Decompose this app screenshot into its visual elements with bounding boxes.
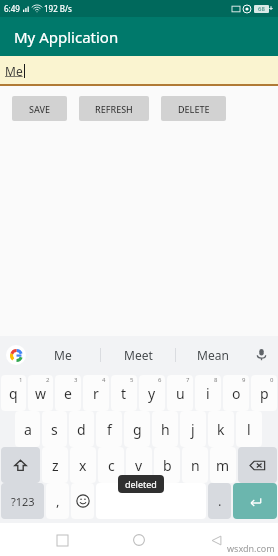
staticText: k <box>217 420 225 439</box>
button[interactable]: b <box>154 447 180 483</box>
staticText: y <box>148 384 156 403</box>
staticText: g <box>133 420 142 439</box>
staticText: r <box>93 384 99 403</box>
staticText: n <box>191 456 200 475</box>
staticText: 0 <box>270 376 274 384</box>
button[interactable]: i <box>195 375 221 411</box>
staticText: 5 <box>130 376 134 384</box>
staticText: v <box>135 456 143 475</box>
staticText: z <box>52 456 59 475</box>
button[interactable]: a <box>15 411 40 447</box>
staticText: 9 <box>242 376 246 384</box>
button[interactable]: ?123 <box>1 483 44 519</box>
staticText: q <box>9 384 18 403</box>
staticText: d <box>77 420 86 439</box>
staticText: REFRESH <box>95 103 133 115</box>
staticText: ?123 <box>11 494 35 509</box>
staticText: o <box>232 384 241 403</box>
button[interactable]: q <box>1 375 26 411</box>
button[interactable]: SAVE <box>12 96 67 121</box>
button[interactable]: t <box>111 375 137 411</box>
button[interactable]: l <box>236 411 262 447</box>
button[interactable]: My Application <box>0 17 278 56</box>
staticText: 1 <box>19 376 23 384</box>
button[interactable]: p <box>251 375 277 411</box>
staticText: 68 <box>258 5 265 13</box>
staticText: p <box>260 384 269 403</box>
button[interactable]: u <box>167 375 193 411</box>
staticText: Meet <box>124 347 153 363</box>
button[interactable]: o <box>223 375 249 411</box>
staticText: Me <box>5 63 23 79</box>
button[interactable]: Emoji <box>71 483 94 519</box>
button[interactable]: h <box>152 411 178 447</box>
staticText: , <box>56 492 60 510</box>
staticText: m <box>216 456 230 475</box>
staticText: s <box>51 420 58 439</box>
staticText: j <box>191 420 195 439</box>
button[interactable]: g <box>124 411 150 447</box>
staticText: DELETE <box>178 103 210 115</box>
staticText: SAVE <box>29 103 51 115</box>
button[interactable]: REFRESH <box>79 96 149 121</box>
button[interactable]: e <box>55 375 81 411</box>
button[interactable]: y <box>139 375 165 411</box>
staticText: b <box>163 456 172 475</box>
staticText: 8 <box>214 376 218 384</box>
staticText: Me <box>54 347 72 363</box>
button[interactable]: j <box>180 411 206 447</box>
button[interactable]: DELETE <box>161 96 226 121</box>
button[interactable]: d <box>69 411 94 447</box>
button[interactable]: x <box>70 447 96 483</box>
button[interactable]: k <box>208 411 234 447</box>
button[interactable]: Back <box>201 525 231 555</box>
staticText: l <box>247 420 251 439</box>
staticText: e <box>64 384 72 403</box>
staticText: 6 <box>158 376 162 384</box>
button[interactable]: Voice input <box>250 336 272 373</box>
staticText: x <box>79 456 87 475</box>
button[interactable]: Me <box>26 336 100 373</box>
staticText: Mean <box>197 347 229 363</box>
staticText: . <box>218 492 222 510</box>
staticText: 6:49 <box>4 3 20 14</box>
button[interactable]: n <box>182 447 208 483</box>
staticText: 3 <box>74 376 78 384</box>
staticText: 2 <box>46 376 50 384</box>
button[interactable]: z <box>42 447 68 483</box>
button[interactable]: Shift <box>1 447 40 483</box>
button[interactable]: . <box>208 483 231 519</box>
button[interactable]: f <box>96 411 122 447</box>
button[interactable]: r <box>83 375 109 411</box>
button[interactable]: , <box>46 483 69 519</box>
button[interactable]: Meet <box>101 336 175 373</box>
button[interactable]: Space <box>96 483 206 519</box>
button[interactable]: m <box>210 447 236 483</box>
staticText: deleted <box>125 478 157 490</box>
staticText: c <box>108 456 115 475</box>
staticText: u <box>176 384 185 403</box>
staticText: + <box>269 4 274 14</box>
button[interactable]: Home <box>124 525 154 555</box>
staticText: My Application <box>14 27 119 47</box>
button[interactable]: Me <box>0 56 278 86</box>
button[interactable]: Enter <box>233 483 277 519</box>
button[interactable]: Backspace <box>238 447 277 483</box>
staticText: h <box>161 420 170 439</box>
staticText: w <box>35 384 47 403</box>
staticText: 7 <box>186 376 190 384</box>
staticText: i <box>206 384 210 403</box>
staticText: 192 B/s <box>44 3 72 14</box>
staticText: 4 <box>102 376 106 384</box>
staticText: a <box>24 420 32 439</box>
button[interactable]: s <box>42 411 67 447</box>
button[interactable]: w <box>28 375 53 411</box>
button[interactable]: Recents <box>47 525 77 555</box>
staticText: t <box>121 384 127 403</box>
staticText: f <box>107 420 112 439</box>
button[interactable]: v <box>126 447 152 483</box>
button[interactable]: c <box>98 447 124 483</box>
button[interactable]: Google <box>6 345 26 365</box>
button[interactable]: Mean <box>176 336 250 373</box>
staticText: wsxdn.com <box>227 542 275 554</box>
